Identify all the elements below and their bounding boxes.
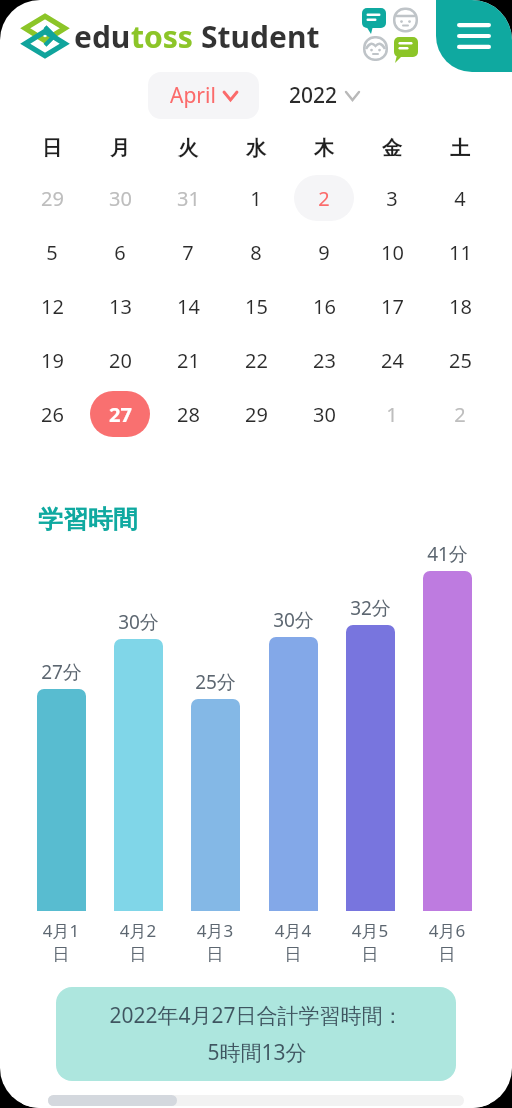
staticText: 41分	[427, 541, 468, 567]
staticText: 5	[46, 239, 58, 266]
button[interactable]: edu	[22, 13, 320, 59]
button[interactable]: 8	[226, 229, 286, 275]
button[interactable]: 1	[362, 391, 422, 437]
staticText: 4月5日	[345, 919, 395, 965]
staticText: 30	[109, 185, 132, 212]
staticText: 4月3日	[190, 919, 240, 965]
staticText: 4	[454, 185, 466, 212]
staticText: 25分	[195, 669, 236, 695]
staticText: 30分	[273, 607, 314, 633]
staticText: edu	[74, 16, 131, 57]
staticText: 20	[109, 347, 132, 374]
button[interactable]: 28	[158, 391, 218, 437]
staticText: 27	[109, 401, 132, 428]
staticText: 3	[386, 185, 398, 212]
staticText: 29	[41, 185, 64, 212]
button[interactable]: 6	[90, 229, 150, 275]
button[interactable]: 14	[158, 283, 218, 329]
button[interactable]: 30	[90, 175, 150, 221]
staticText: 15	[245, 293, 268, 320]
button[interactable]: 19	[22, 337, 82, 383]
button[interactable]: 9	[294, 229, 354, 275]
staticText: 4月2日	[113, 919, 163, 965]
staticText: 31	[177, 185, 200, 212]
staticText: 火	[178, 136, 198, 161]
button[interactable]	[346, 625, 395, 911]
staticText: 土	[450, 136, 470, 161]
button[interactable]: 18	[430, 283, 490, 329]
staticText: 8	[250, 239, 262, 266]
button[interactable]: 5	[22, 229, 82, 275]
staticText: 4月4日	[268, 919, 318, 965]
staticText: 25	[449, 347, 472, 374]
staticText: 水	[246, 136, 266, 161]
button[interactable]	[423, 571, 472, 911]
button[interactable]: Scroll	[48, 1095, 177, 1106]
staticText: 24	[381, 347, 404, 374]
staticText: 30	[313, 401, 336, 428]
staticText: toss	[131, 16, 193, 57]
button[interactable]: 7	[158, 229, 218, 275]
button[interactable]: 2022年4月27日合計学習時間：	[56, 987, 456, 1081]
staticText: 23	[313, 347, 336, 374]
staticText: 2022	[289, 81, 338, 110]
staticText: 18	[449, 293, 472, 320]
staticText: 13	[109, 293, 132, 320]
button[interactable]: 1	[226, 175, 286, 221]
button[interactable]: 27	[90, 391, 150, 437]
button[interactable]: 23	[294, 337, 354, 383]
staticText: 金	[382, 136, 402, 161]
button[interactable]: 4	[430, 175, 490, 221]
button[interactable]: 2	[294, 175, 354, 221]
button[interactable]: 11	[430, 229, 490, 275]
staticText: 10	[381, 239, 404, 266]
button[interactable]: 13	[90, 283, 150, 329]
staticText: 30分	[118, 609, 159, 635]
staticText: 4月1日	[36, 919, 86, 965]
button[interactable]: 20	[90, 337, 150, 383]
button[interactable]: 29	[226, 391, 286, 437]
button[interactable]	[37, 689, 86, 911]
button[interactable]: 29	[22, 175, 82, 221]
button[interactable]: 25	[430, 337, 490, 383]
staticText: 19	[41, 347, 64, 374]
button[interactable]	[269, 637, 318, 911]
staticText: 22	[245, 347, 268, 374]
staticText: 14	[177, 293, 200, 320]
staticText: 6	[114, 239, 126, 266]
staticText: 27分	[41, 659, 82, 685]
staticText: 21	[177, 347, 200, 374]
staticText: 木	[314, 136, 334, 161]
button[interactable]: Messages	[358, 3, 424, 69]
staticText: 32分	[350, 595, 391, 621]
button[interactable]: 2022	[283, 72, 365, 119]
button[interactable]: 15	[226, 283, 286, 329]
staticText: 2022年4月27日合計学習時間：	[109, 1001, 404, 1030]
button[interactable]: 17	[362, 283, 422, 329]
button[interactable]: 22	[226, 337, 286, 383]
button[interactable]	[191, 699, 240, 911]
button[interactable]: 10	[362, 229, 422, 275]
staticText: 2	[454, 401, 466, 428]
button[interactable]: 31	[158, 175, 218, 221]
button[interactable]: 3	[362, 175, 422, 221]
button[interactable]: Menu	[436, 0, 512, 72]
staticText: 29	[245, 401, 268, 428]
button[interactable]: 16	[294, 283, 354, 329]
staticText: 28	[177, 401, 200, 428]
button[interactable]: 2	[430, 391, 490, 437]
staticText: 月	[110, 136, 130, 161]
staticText: 11	[449, 239, 472, 266]
staticText: 16	[313, 293, 336, 320]
staticText: 9	[318, 239, 330, 266]
button[interactable]: 26	[22, 391, 82, 437]
button[interactable]: April	[148, 72, 259, 119]
button[interactable]: 30	[294, 391, 354, 437]
button[interactable]: 12	[22, 283, 82, 329]
button[interactable]: 21	[158, 337, 218, 383]
staticText: 1	[386, 401, 398, 428]
button[interactable]: 24	[362, 337, 422, 383]
button[interactable]	[114, 639, 163, 911]
staticText: 4月6日	[422, 919, 472, 965]
staticText: 1	[250, 185, 262, 212]
